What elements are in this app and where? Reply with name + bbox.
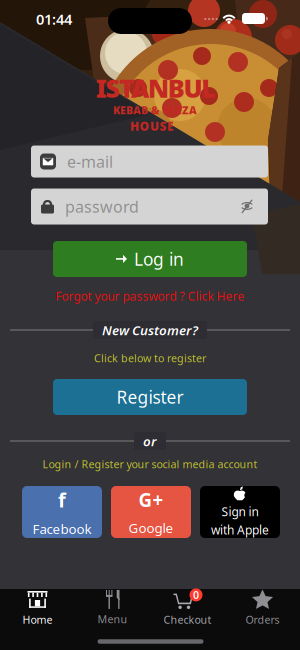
staticText: Register xyxy=(116,385,183,408)
button[interactable]: e-mail xyxy=(31,145,268,177)
staticText: f xyxy=(58,486,66,513)
button[interactable]: Forgot your password ? Click Here xyxy=(55,288,244,304)
staticText: ISTANBUL xyxy=(96,71,216,105)
button[interactable]: Home xyxy=(0,587,74,629)
staticText: Login / Register your social media accou… xyxy=(42,457,257,471)
staticText: Sign in xyxy=(221,504,258,519)
staticText: Forgot your password ? Click Here xyxy=(55,288,244,304)
staticText: Log in xyxy=(134,247,184,270)
staticText: G+ xyxy=(138,487,163,512)
staticText: with Apple xyxy=(211,522,269,538)
staticText: KEBAB & PIZZA xyxy=(113,103,197,117)
button[interactable]: 0 xyxy=(150,587,224,629)
button[interactable]: G+ xyxy=(111,486,191,538)
staticText: password xyxy=(65,196,139,217)
staticText: New Customer? xyxy=(102,321,198,339)
button[interactable]: Log in xyxy=(53,241,247,277)
button[interactable]: f xyxy=(22,486,102,538)
staticText: or xyxy=(143,432,157,450)
button[interactable]: Menu xyxy=(75,587,149,629)
button[interactable]: Orders xyxy=(225,587,299,629)
staticText: Home xyxy=(22,612,52,627)
button[interactable]: password xyxy=(31,188,268,224)
staticText: Menu xyxy=(97,612,127,626)
staticText: 0 xyxy=(193,588,199,602)
staticText: HOUSE xyxy=(130,118,174,134)
staticText: Checkout xyxy=(163,612,211,627)
button[interactable]: Sign in xyxy=(200,486,280,538)
button[interactable]: Register xyxy=(53,379,247,415)
staticText: Google xyxy=(128,519,173,537)
staticText: e-mail xyxy=(67,151,113,172)
staticText: Facebook xyxy=(32,520,91,538)
staticText: Click below to register xyxy=(94,351,206,365)
staticText: Orders xyxy=(245,612,279,627)
staticText: 01:44 xyxy=(36,9,72,29)
